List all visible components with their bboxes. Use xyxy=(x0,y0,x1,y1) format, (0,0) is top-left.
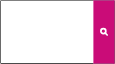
button[interactable]: Search query xyxy=(0,0,93,64)
button[interactable]: Search xyxy=(93,0,115,64)
